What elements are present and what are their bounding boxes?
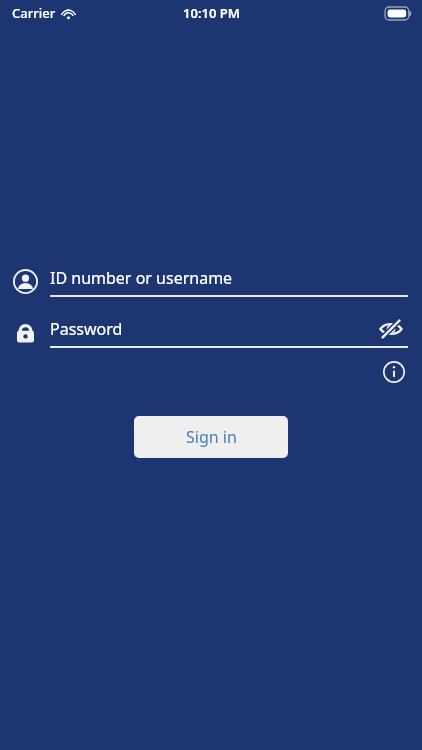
staticText: 10:10 PM [183,4,240,22]
staticText: ID number or username [50,267,233,289]
staticText: Sign in [186,426,237,448]
staticText: Carrier [12,4,56,22]
button[interactable]: Show password [376,314,406,344]
button[interactable]: Sign in [134,416,288,458]
button[interactable]: Password [50,309,408,355]
other: Username [11,267,39,295]
staticText: Password [50,318,123,340]
button[interactable]: Information [379,357,409,387]
other: Password [11,318,39,346]
button[interactable]: ID number or username [50,258,408,304]
